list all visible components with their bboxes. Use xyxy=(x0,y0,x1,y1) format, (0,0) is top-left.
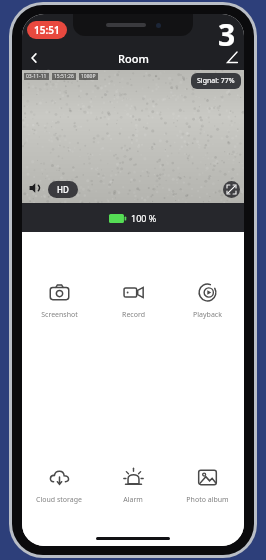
staticText: 100 % xyxy=(131,212,157,224)
button[interactable]: Signal: 77% xyxy=(191,73,241,89)
staticText: Cloud storage xyxy=(36,495,82,505)
button[interactable]: Cloud storage xyxy=(22,465,96,507)
button[interactable]: Alarm xyxy=(96,465,170,507)
staticText: 03-11-11 xyxy=(26,73,47,80)
button[interactable]: Playback xyxy=(170,280,244,322)
staticText: Signal: 77% xyxy=(197,76,235,86)
button[interactable]: Record xyxy=(96,280,170,322)
button[interactable]: Mute xyxy=(25,178,44,197)
button[interactable]: HD xyxy=(48,181,78,198)
staticText: Screenshot xyxy=(41,310,78,320)
button[interactable]: Back xyxy=(22,46,46,70)
staticText: 1080P xyxy=(81,73,96,80)
staticText: Record xyxy=(122,310,145,320)
staticText: HD xyxy=(57,184,69,195)
button[interactable]: Fullscreen xyxy=(223,181,240,198)
staticText: Alarm xyxy=(123,495,143,505)
staticText: 3 xyxy=(218,14,236,46)
staticText: Playback xyxy=(193,310,222,320)
staticText: Photo album xyxy=(186,495,229,505)
button[interactable]: Screenshot xyxy=(22,280,96,322)
staticText: 15:51 xyxy=(34,23,60,37)
staticText: 15:51:26 xyxy=(54,73,74,80)
button[interactable]: Edit xyxy=(220,46,244,70)
staticText: Room xyxy=(118,51,149,66)
button[interactable]: Photo album xyxy=(170,465,244,507)
